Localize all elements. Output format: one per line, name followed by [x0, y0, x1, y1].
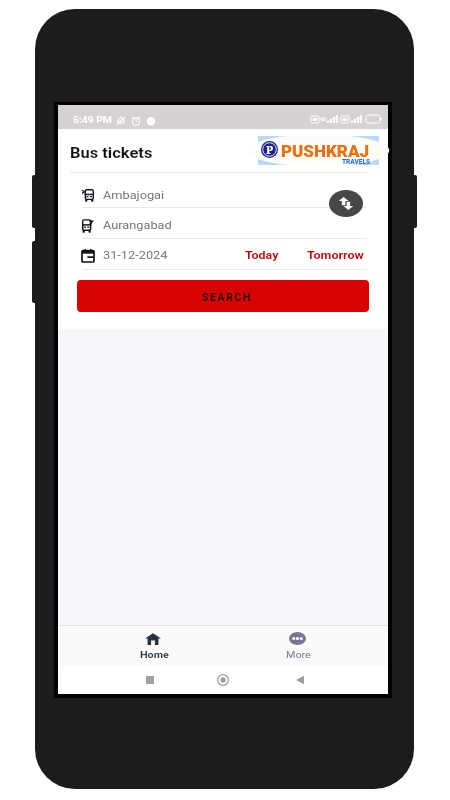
staticText: SEARCH [202, 291, 253, 303]
staticText: 5:49 PM [73, 115, 112, 126]
staticText: P [266, 142, 274, 157]
button[interactable]: SEARCH [77, 280, 369, 312]
staticText: Home [140, 649, 169, 660]
staticText: 31-12-2024 [103, 249, 168, 262]
button[interactable]: Home [120, 626, 184, 666]
staticText: PUSHKRAJ [281, 141, 370, 161]
button[interactable]: Today [240, 243, 279, 268]
button[interactable]: Ambajogai [58, 173, 388, 207]
button[interactable]: Aurangabad [58, 208, 388, 238]
staticText: Aurangabad [103, 219, 173, 232]
staticText: More [286, 649, 311, 660]
staticText: 4G [320, 116, 327, 122]
button[interactable]: More [265, 626, 329, 666]
button[interactable]: Recents [140, 670, 160, 690]
button[interactable]: Tomorrow [302, 243, 361, 268]
staticText: TRAVELS [342, 158, 371, 166]
button[interactable]: Home [213, 670, 233, 690]
button[interactable]: Back [290, 670, 310, 690]
staticText: Tomorrow [307, 249, 364, 262]
staticText: Today [245, 249, 279, 262]
button[interactable]: Swap source and destination [329, 190, 363, 217]
staticText: Bus tickets [70, 145, 152, 162]
staticText: Ambajogai [103, 189, 164, 202]
